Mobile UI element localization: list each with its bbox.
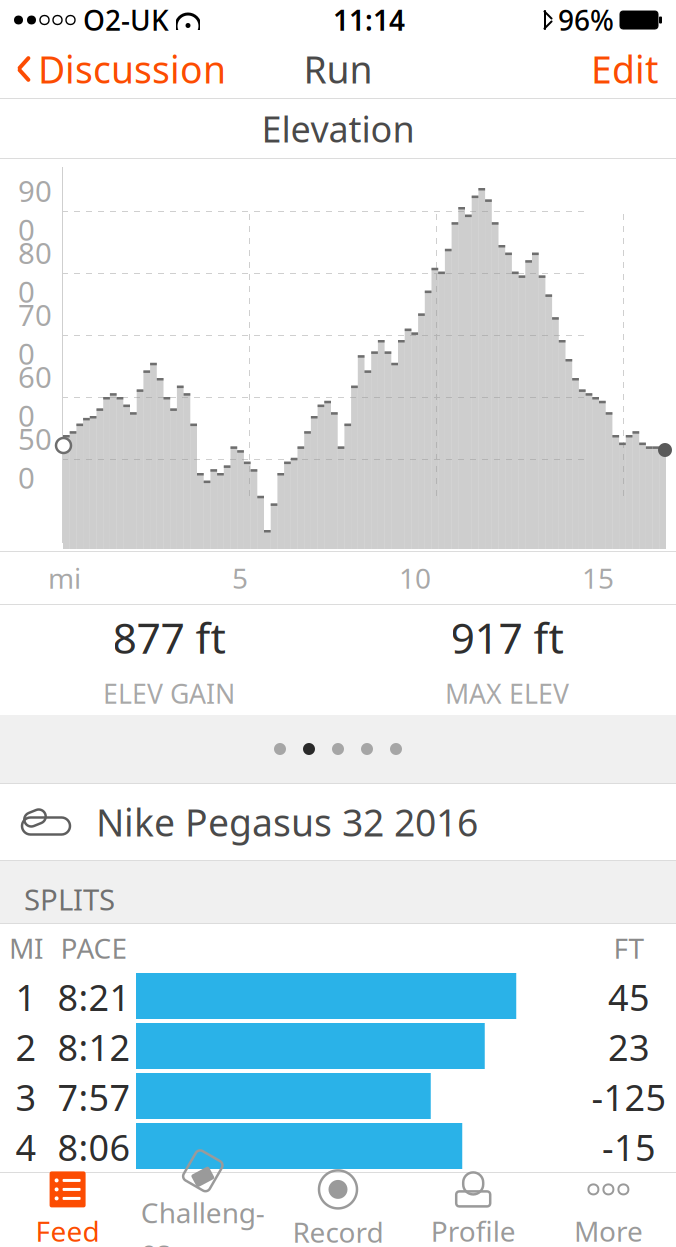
- staticText: Elevation: [261, 105, 414, 152]
- staticText: 900: [18, 171, 52, 249]
- staticText: More: [574, 1212, 643, 1247]
- staticText: Challenges: [141, 1194, 265, 1247]
- staticText: 8:06: [57, 1123, 130, 1171]
- staticText: MI: [9, 929, 43, 967]
- staticText: -15: [602, 1123, 656, 1171]
- staticText: 600: [18, 357, 52, 435]
- staticText: -125: [591, 1073, 666, 1121]
- staticText: mi: [48, 559, 81, 597]
- button[interactable]: Challenges: [135, 1173, 270, 1247]
- staticText: 10: [399, 559, 431, 597]
- staticText: 5: [232, 559, 248, 597]
- staticText: 8:12: [57, 1023, 130, 1071]
- staticText: 45: [608, 973, 650, 1021]
- staticText: MAX ELEV: [445, 676, 569, 711]
- staticText: 3: [15, 1073, 36, 1121]
- staticText: 1: [15, 973, 36, 1021]
- button[interactable]: Discussion: [0, 40, 242, 98]
- staticText: SPLITS: [24, 879, 115, 918]
- staticText: 96%: [558, 1, 614, 39]
- staticText: 500: [18, 419, 52, 497]
- staticText: 8:21: [57, 973, 130, 1021]
- staticText: Record: [292, 1213, 383, 1247]
- button[interactable]: More: [541, 1173, 676, 1247]
- staticText: Nike Pegasus 32 2016: [96, 797, 478, 847]
- staticText: 23: [608, 1023, 650, 1071]
- staticText: 700: [18, 295, 52, 373]
- staticText: 917 ft: [450, 609, 563, 666]
- staticText: 7:57: [57, 1073, 130, 1121]
- staticText: 800: [18, 233, 52, 311]
- staticText: 2: [15, 1023, 36, 1071]
- staticText: FT: [613, 929, 644, 967]
- button[interactable]: Profile: [406, 1173, 541, 1247]
- button[interactable]: Nike Pegasus 32 2016: [0, 784, 676, 860]
- button[interactable]: Feed: [0, 1173, 135, 1247]
- staticText: 877 ft: [112, 609, 225, 666]
- staticText: 11:14: [333, 1, 405, 39]
- button[interactable]: Record: [270, 1173, 406, 1247]
- button[interactable]: Edit: [573, 40, 676, 98]
- staticText: 15: [582, 559, 614, 597]
- staticText: Run: [303, 44, 372, 94]
- staticText: ELEV GAIN: [103, 676, 235, 711]
- staticText: 4: [15, 1123, 36, 1171]
- staticText: Feed: [36, 1212, 100, 1247]
- staticText: Profile: [431, 1212, 516, 1247]
- staticText: O2-UK: [83, 1, 169, 39]
- staticText: Discussion: [38, 44, 226, 94]
- staticText: Edit: [591, 44, 658, 94]
- staticText: PACE: [60, 929, 127, 967]
